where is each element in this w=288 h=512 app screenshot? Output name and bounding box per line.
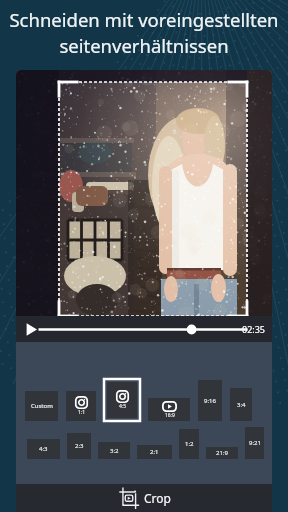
staticText: 1:1 — [78, 409, 86, 416]
staticText: 4:3 — [39, 445, 48, 453]
button[interactable]: Crop — [112, 486, 177, 510]
staticText: seitenverhältnissen — [59, 33, 229, 58]
staticText: 9:21 — [249, 439, 261, 447]
staticText: 1:2 — [185, 440, 194, 448]
button[interactable]: 4:5 — [107, 382, 137, 418]
button[interactable]: 21:9 — [206, 447, 238, 459]
button[interactable]: 2:1 — [137, 445, 172, 459]
staticText: 21:9 — [216, 449, 228, 457]
button[interactable]: Seek position — [38, 322, 230, 336]
staticText: Schneiden mit voreingestellten — [9, 7, 279, 32]
staticText: 9:16 — [204, 397, 216, 405]
button[interactable]: 1:1 — [66, 391, 96, 421]
staticText: 4:5 — [119, 403, 127, 410]
button[interactable]: 4:3 — [27, 439, 60, 459]
staticText: Custom — [31, 402, 53, 410]
button[interactable]: Custom — [25, 391, 58, 421]
staticText: 2:1 — [150, 448, 159, 456]
button[interactable]: 3:4 — [230, 388, 252, 421]
button[interactable]: 9:21 — [245, 427, 264, 459]
staticText: 2:3 — [75, 442, 84, 450]
button[interactable]: 16:9 — [148, 398, 190, 421]
staticText: 16:9 — [165, 412, 175, 419]
staticText: 02:35 — [242, 323, 266, 335]
button[interactable]: 3:2 — [98, 442, 130, 459]
button[interactable]: Play — [23, 320, 41, 338]
staticText: 3:4 — [237, 401, 246, 409]
staticText: Crop — [144, 490, 171, 506]
button[interactable]: 2:3 — [67, 433, 91, 459]
button[interactable]: 9:16 — [198, 380, 222, 421]
staticText: 3:2 — [110, 447, 119, 455]
button[interactable]: 1:2 — [179, 429, 199, 459]
